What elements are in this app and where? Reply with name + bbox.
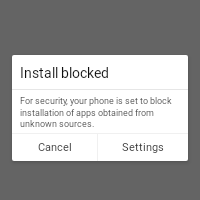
button[interactable]: Cancel	[12, 134, 97, 161]
staticText: For security, your phone is set to block…	[20, 96, 183, 129]
button[interactable]: Settings	[98, 134, 188, 161]
staticText: Install blocked	[20, 65, 109, 81]
staticText: Cancel	[38, 141, 72, 154]
staticText: Settings	[122, 141, 164, 154]
